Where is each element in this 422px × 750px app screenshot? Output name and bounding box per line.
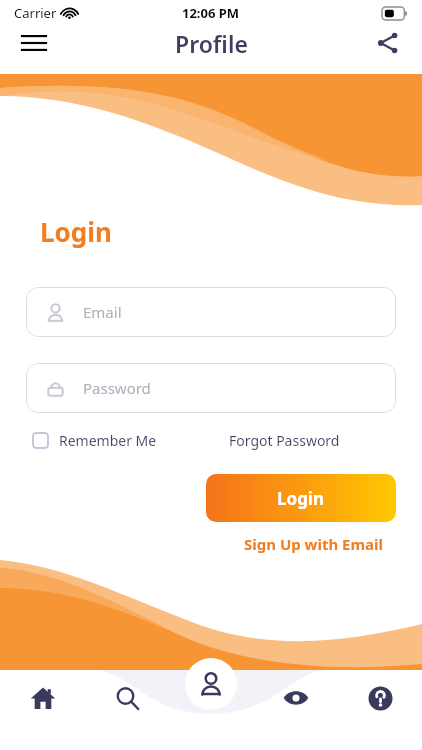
button[interactable]: Login: [206, 474, 396, 522]
staticText: 12:06 PM: [182, 4, 240, 22]
button[interactable]: Forgot Password: [229, 431, 340, 450]
staticText: Login: [40, 214, 112, 249]
button[interactable]: Home: [0, 670, 85, 726]
staticText: Forgot Password: [229, 431, 340, 450]
button[interactable]: Menu: [12, 21, 56, 65]
button[interactable]: Help: [338, 670, 422, 726]
staticText: Profile: [175, 28, 248, 59]
button[interactable]: Profile: [185, 658, 237, 710]
button[interactable]: Search: [85, 670, 170, 726]
staticText: Email: [83, 302, 122, 322]
button[interactable]: Sign Up with Email: [244, 534, 384, 554]
button[interactable]: Share: [366, 21, 410, 65]
staticText: Password: [83, 378, 151, 398]
staticText: Remember Me: [59, 431, 157, 450]
staticText: Login: [277, 487, 325, 510]
button[interactable]: Views: [254, 670, 338, 726]
staticText: Carrier: [14, 4, 57, 22]
button[interactable]: Remember Me: [32, 431, 157, 450]
button[interactable]: Email: [26, 287, 396, 337]
button[interactable]: Password: [26, 363, 396, 413]
staticText: Sign Up with Email: [244, 534, 384, 554]
